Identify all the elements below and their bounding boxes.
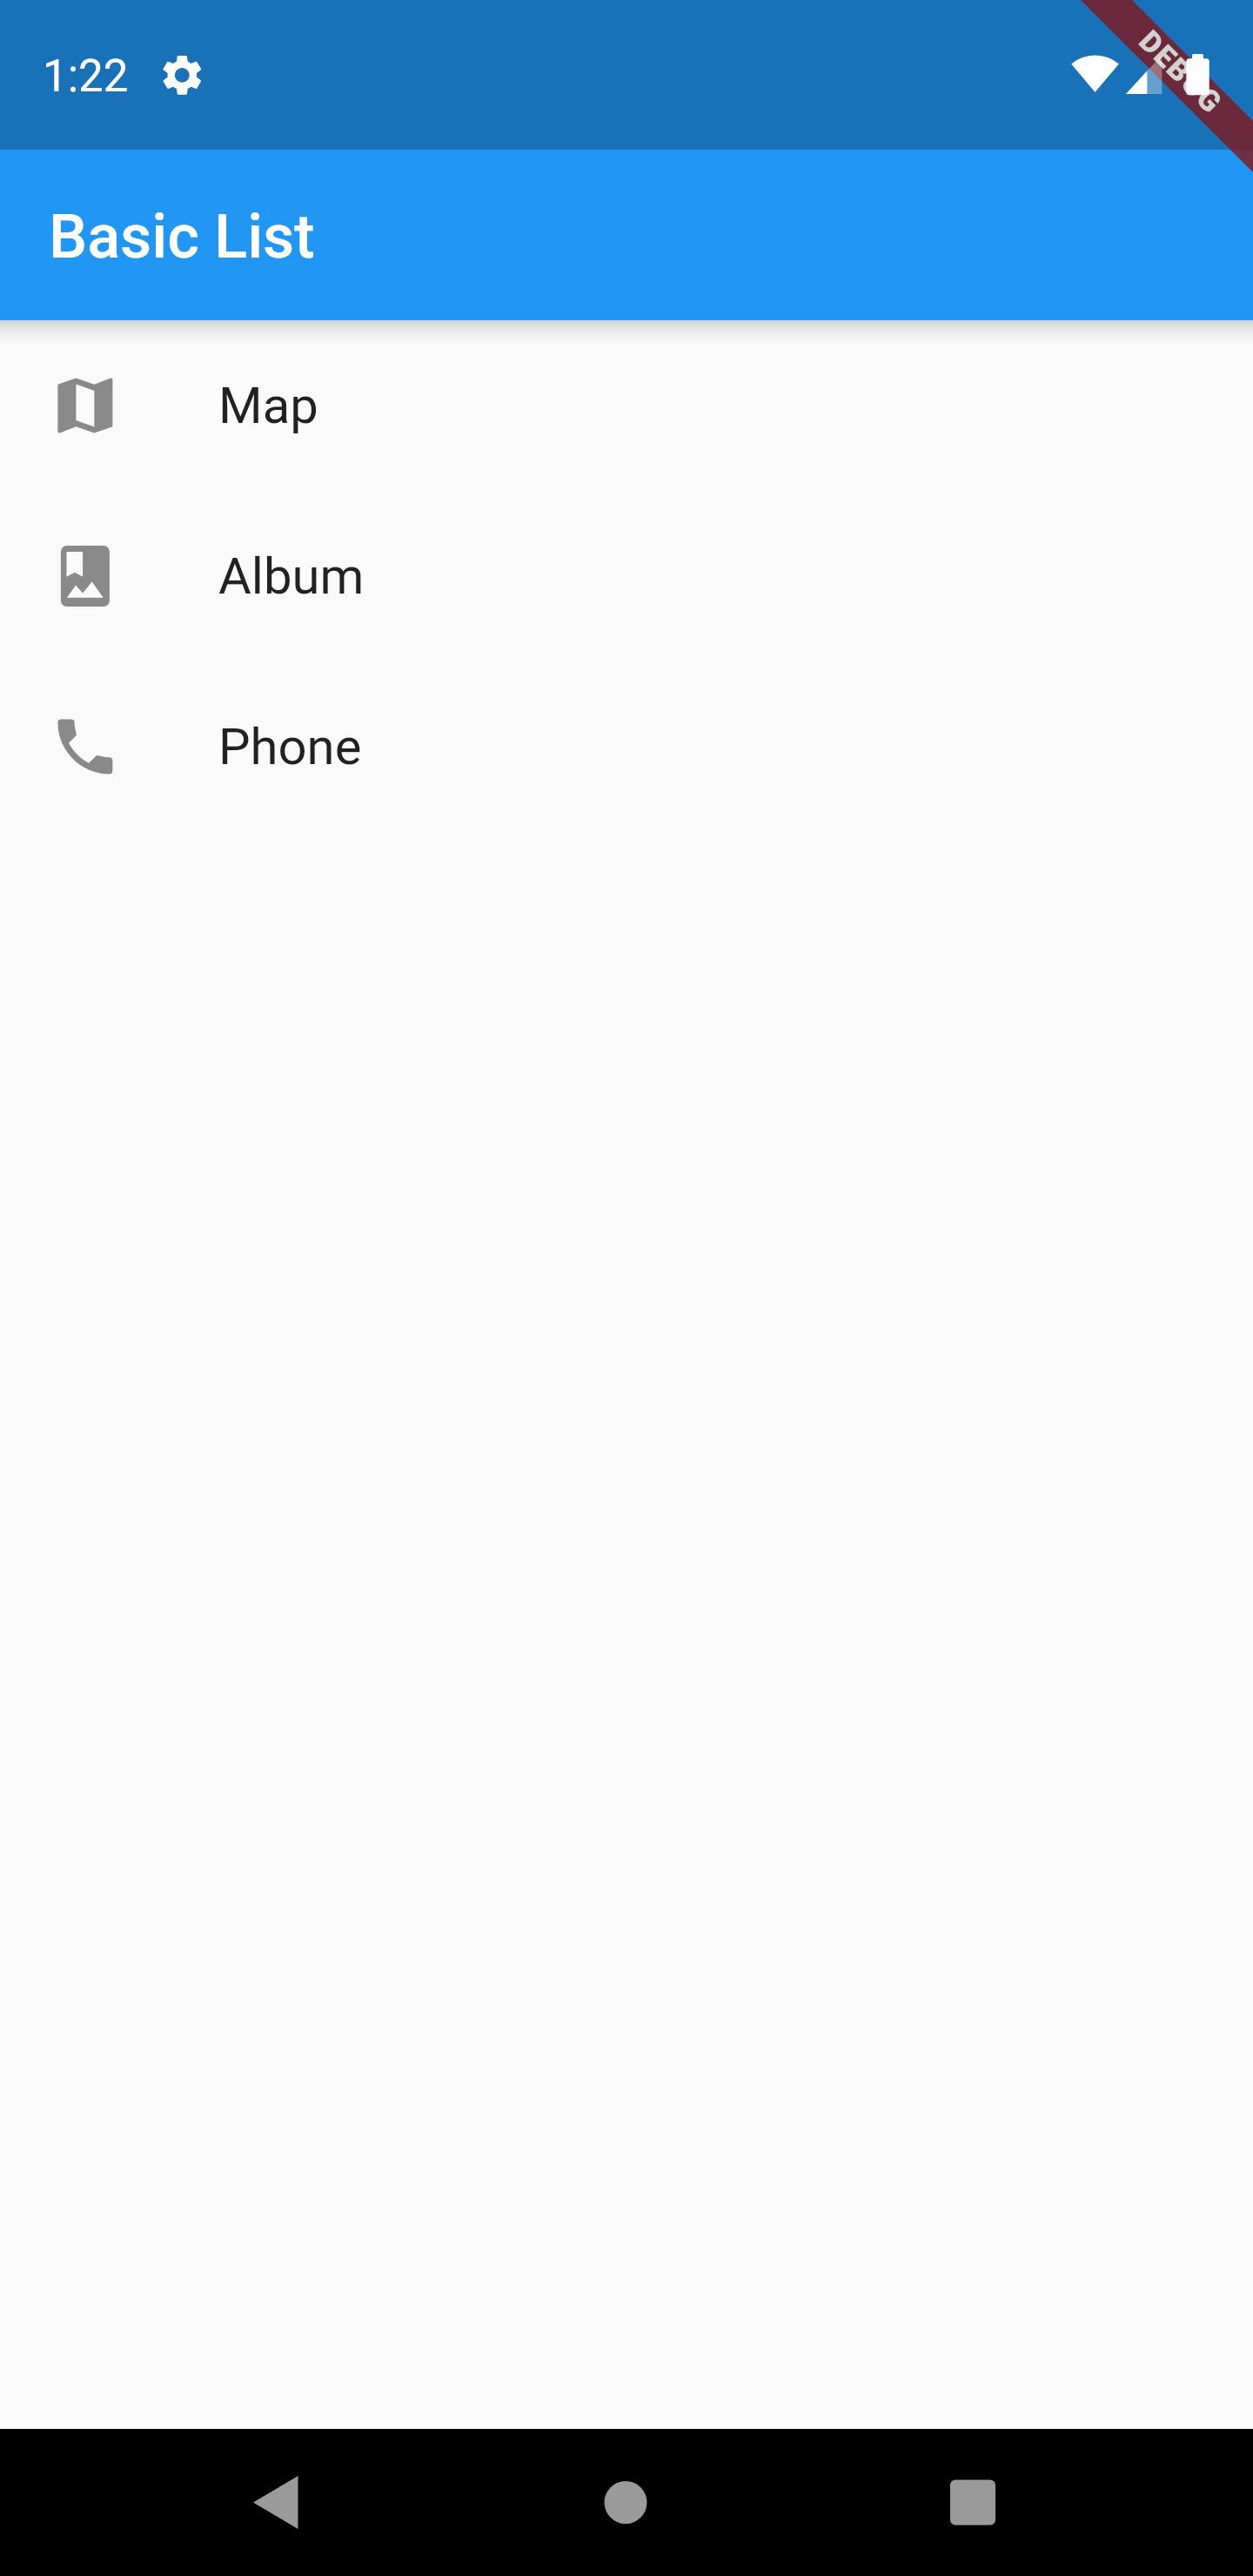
button[interactable]: Back bbox=[0, 2429, 418, 2576]
staticText: Album bbox=[218, 547, 365, 606]
staticText: Basic List bbox=[49, 201, 315, 272]
button[interactable]: Phone bbox=[0, 661, 1253, 832]
staticText: Phone bbox=[218, 717, 362, 776]
staticText: Map bbox=[218, 376, 318, 435]
button[interactable]: Home bbox=[418, 2429, 835, 2576]
button[interactable]: Recent apps bbox=[835, 2429, 1253, 2576]
button[interactable]: Map bbox=[0, 320, 1253, 491]
staticText: 1:22 bbox=[43, 50, 129, 103]
button[interactable]: Album bbox=[0, 491, 1253, 661]
